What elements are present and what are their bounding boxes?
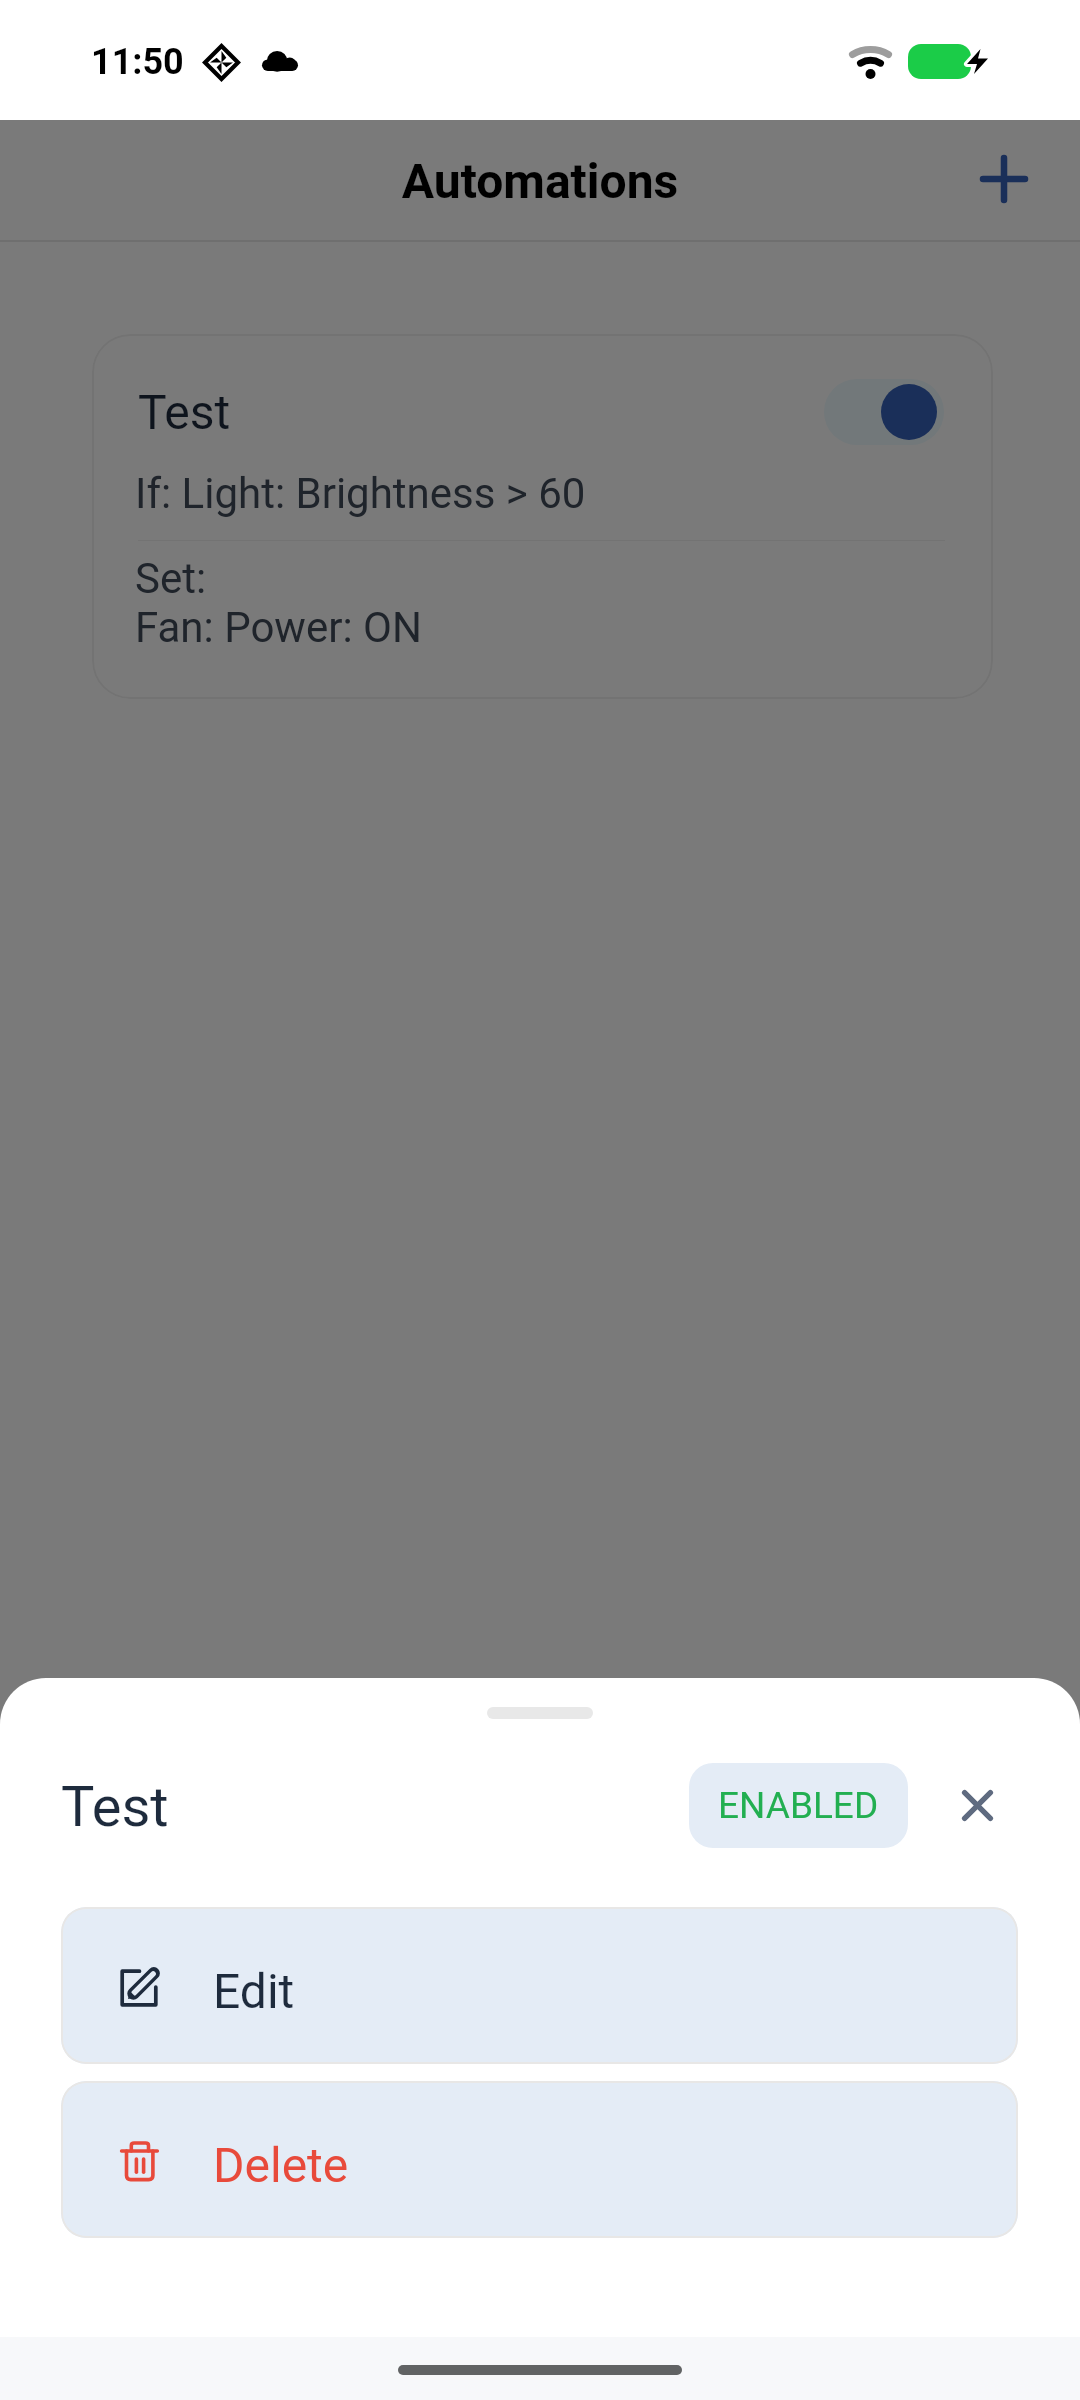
staticText: Test [61,1774,169,1840]
staticText: Test [138,384,231,440]
button[interactable]: Close [942,1770,1013,1841]
staticText: ENABLED [718,1784,879,1827]
staticText: Edit [213,1963,295,2019]
staticText: If: Light: Brightness > 60 [135,469,586,518]
button[interactable]: ENABLED [689,1763,908,1848]
staticText: Set: Fan: Power: ON [135,554,422,652]
button[interactable]: Toggle automation [824,379,944,445]
button[interactable]: Add automation [966,141,1042,217]
button[interactable]: Delete [61,2081,1018,2238]
staticText: Delete [213,2137,349,2193]
button[interactable]: Edit [61,1907,1018,2064]
staticText: Automations [0,153,1080,209]
staticText: 11:50 [91,41,184,83]
button[interactable]: Test [92,334,993,699]
